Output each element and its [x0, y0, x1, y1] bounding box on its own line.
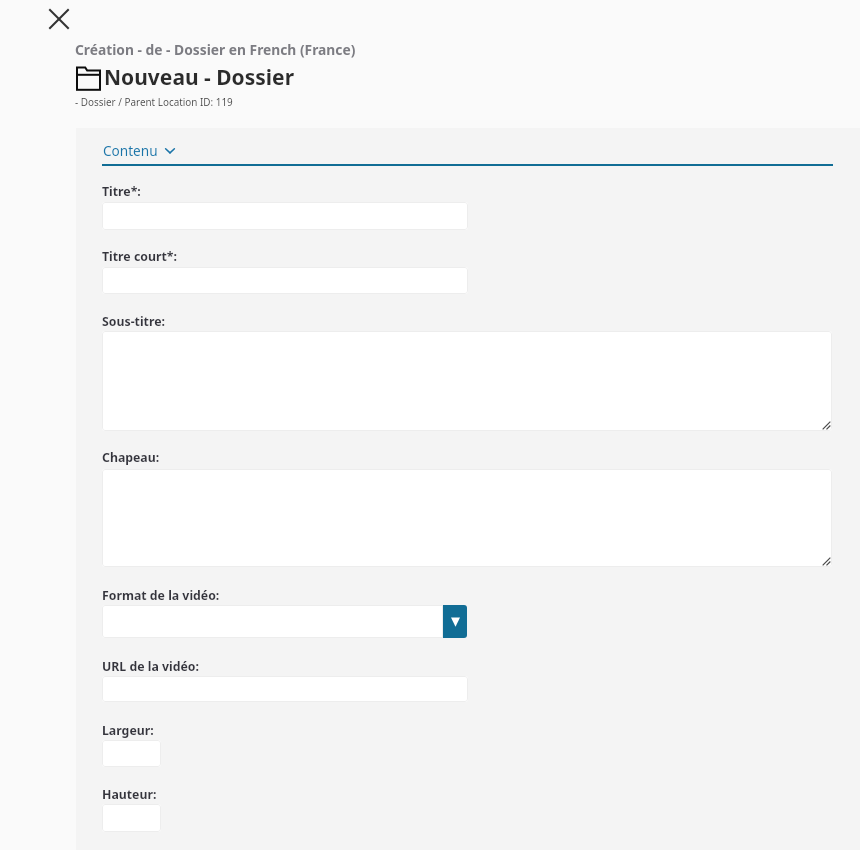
button[interactable]	[102, 331, 832, 431]
button[interactable]: Format de la vidéo, liste déroulante	[102, 605, 467, 638]
button[interactable]	[102, 740, 161, 767]
staticText: Hauteur:	[102, 786, 157, 803]
button[interactable]: Contenu	[103, 141, 175, 160]
button[interactable]	[102, 469, 832, 567]
staticText: Titre court*:	[102, 248, 177, 265]
staticText: - Dossier / Parent Location ID: 119	[75, 95, 233, 108]
staticText: Contenu	[103, 141, 158, 160]
staticText: URL de la vidéo:	[102, 658, 199, 675]
staticText: Chapeau:	[102, 449, 160, 466]
staticText: Création - de - Dossier en French (Franc…	[75, 40, 356, 59]
button[interactable]: Close	[45, 5, 73, 33]
button[interactable]	[102, 202, 468, 230]
button[interactable]	[102, 804, 161, 832]
button[interactable]	[102, 267, 468, 294]
staticText: Format de la vidéo:	[102, 587, 220, 604]
staticText: Sous-titre:	[102, 313, 165, 330]
staticText: Titre*:	[102, 183, 141, 200]
staticText: Nouveau - Dossier	[104, 63, 295, 92]
staticText: Largeur:	[102, 722, 154, 739]
button[interactable]	[102, 676, 468, 702]
